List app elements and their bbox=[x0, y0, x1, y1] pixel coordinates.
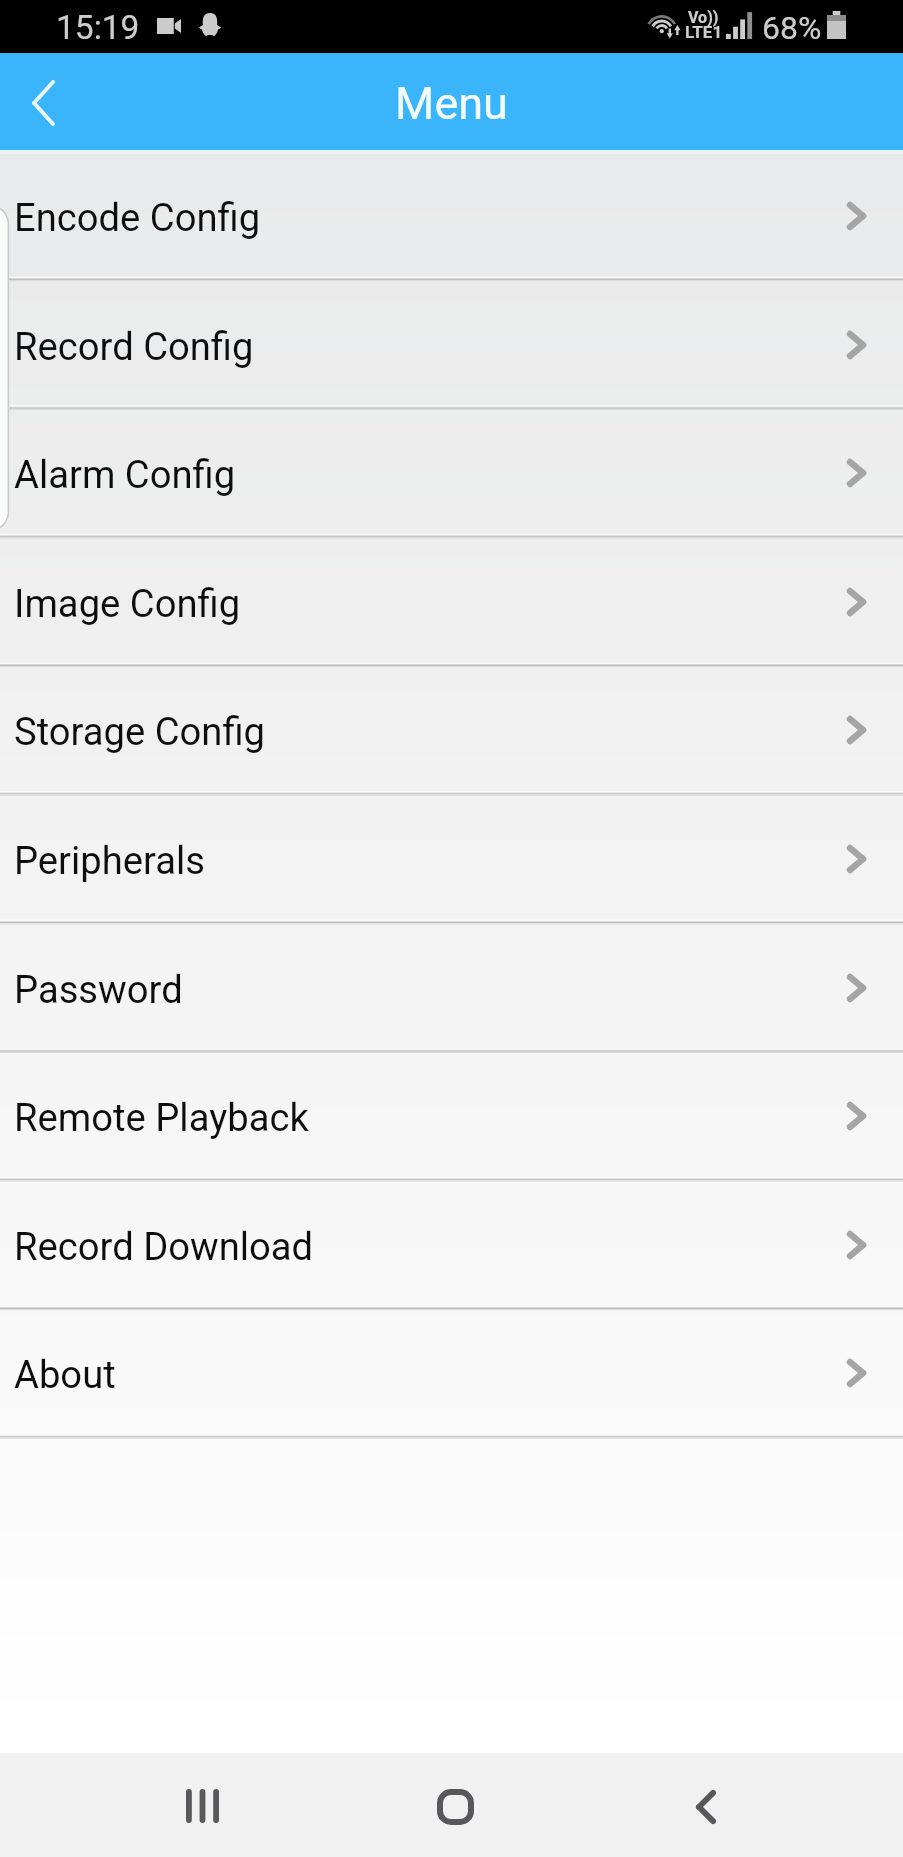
staticText: Peripherals bbox=[14, 839, 206, 884]
button[interactable]: Peripherals bbox=[0, 793, 903, 922]
button[interactable]: Remote Playback bbox=[0, 1050, 903, 1179]
button[interactable]: Navigate up bbox=[0, 53, 88, 150]
staticText: Vo)) bbox=[688, 8, 719, 27]
button[interactable]: Record Download bbox=[0, 1179, 903, 1308]
staticText: Image Config bbox=[14, 582, 241, 627]
staticText: About bbox=[14, 1353, 116, 1398]
staticText: Record Config bbox=[14, 325, 254, 370]
staticText: 15:19 bbox=[56, 8, 140, 47]
staticText: Alarm Config bbox=[14, 453, 236, 498]
button[interactable]: Password bbox=[0, 922, 903, 1051]
staticText: LTE1 bbox=[685, 22, 723, 42]
button[interactable]: Home bbox=[413, 1753, 496, 1857]
button[interactable]: Record Config bbox=[0, 279, 903, 408]
button[interactable]: Image Config bbox=[0, 536, 903, 665]
staticText: Record Download bbox=[14, 1225, 314, 1270]
staticText: Password bbox=[14, 968, 183, 1013]
staticText: Menu bbox=[395, 77, 508, 130]
button[interactable]: Back bbox=[666, 1753, 747, 1857]
staticText: 68% bbox=[762, 9, 822, 47]
button[interactable]: About bbox=[0, 1307, 903, 1436]
button[interactable]: Alarm Config bbox=[0, 407, 903, 536]
button[interactable]: Recent apps bbox=[160, 1753, 242, 1857]
button[interactable]: Encode Config bbox=[0, 150, 903, 279]
button[interactable]: Storage Config bbox=[0, 664, 903, 793]
staticText: Remote Playback bbox=[14, 1096, 309, 1141]
staticText: Storage Config bbox=[14, 710, 266, 755]
staticText: Encode Config bbox=[14, 196, 261, 241]
